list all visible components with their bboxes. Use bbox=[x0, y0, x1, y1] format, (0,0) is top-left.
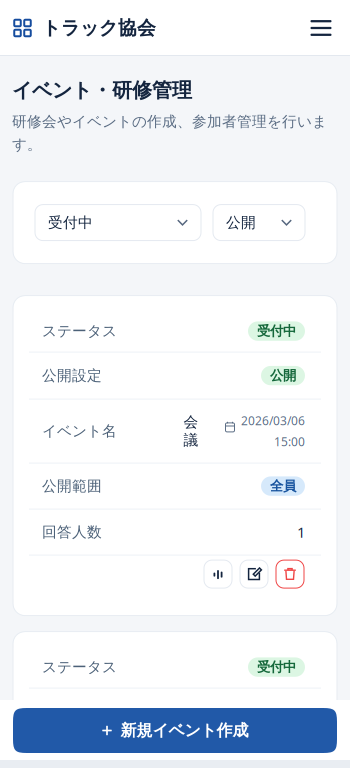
staticText: イベント名 bbox=[42, 422, 117, 440]
staticText: 新規イベント作成 bbox=[120, 721, 248, 740]
button[interactable]: 受付中 bbox=[35, 205, 201, 241]
staticText: ステータス bbox=[42, 658, 117, 676]
staticText: イベント・研修管理 bbox=[12, 78, 192, 103]
button[interactable]: 公開 bbox=[213, 205, 305, 241]
staticText: 会議 bbox=[183, 749, 198, 768]
button[interactable]: トラック協会 bbox=[14, 8, 156, 47]
staticText: 公開範囲 bbox=[42, 477, 102, 495]
staticText: ステータス bbox=[42, 322, 117, 340]
staticText: 受付中 bbox=[257, 323, 296, 339]
staticText: イベント名 bbox=[42, 758, 117, 768]
staticText: 会議 bbox=[183, 413, 198, 449]
staticText: トラック協会 bbox=[42, 16, 156, 39]
staticText: 15:00 bbox=[274, 434, 305, 449]
staticText: 2026/03/06 bbox=[241, 749, 305, 765]
button[interactable]: 削除 bbox=[276, 560, 304, 588]
staticText: 公開設定 bbox=[42, 367, 102, 385]
staticText: 全員 bbox=[270, 478, 296, 494]
button[interactable]: 編集 bbox=[240, 560, 268, 588]
button[interactable]: 統計 bbox=[204, 560, 232, 588]
staticText: 研修会やイベントの作成、参加者管理を行います。 bbox=[12, 113, 327, 154]
button[interactable]: メニュー bbox=[306, 13, 336, 43]
staticText: 2026/03/06 bbox=[241, 413, 305, 429]
staticText: 公開 bbox=[226, 214, 256, 232]
staticText: 回答人数 bbox=[42, 523, 102, 541]
staticText: 1 bbox=[297, 522, 305, 542]
button[interactable]: 新規イベント作成 bbox=[13, 708, 337, 753]
staticText: 公開設定 bbox=[42, 703, 102, 721]
staticText: 公開 bbox=[270, 367, 296, 384]
staticText: 受付中 bbox=[257, 659, 296, 675]
staticText: 公開 bbox=[270, 703, 296, 720]
staticText: 受付中 bbox=[48, 214, 93, 232]
